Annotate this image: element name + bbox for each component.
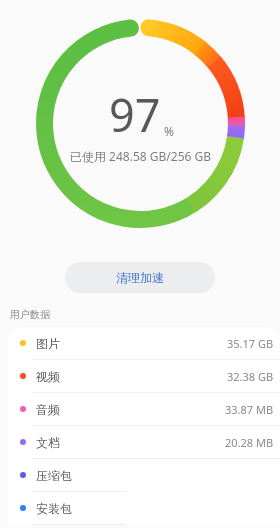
button[interactable]: 音频 <box>8 393 280 426</box>
button[interactable]: 视频 <box>8 360 280 393</box>
button[interactable]: 图片 <box>8 327 280 360</box>
staticText: 安装包 <box>36 501 72 516</box>
button[interactable]: 清理加速 <box>65 262 215 293</box>
button[interactable]: 压缩包 <box>8 459 280 492</box>
button[interactable]: 文档 <box>8 426 280 459</box>
staticText: 32.38 GB <box>227 369 274 384</box>
staticText: 33.87 MB <box>225 402 274 417</box>
staticText: % <box>164 123 174 139</box>
staticText: 35.17 GB <box>227 336 274 351</box>
staticText: 97 <box>109 84 161 145</box>
staticText: 20.28 MB <box>225 435 274 450</box>
staticText: 清理加速 <box>116 270 164 285</box>
staticText: 图片 <box>36 336 60 351</box>
staticText: 已使用 248.58 GB/256 GB <box>70 148 212 164</box>
staticText: 用户数据 <box>10 308 50 321</box>
staticText: 视频 <box>36 369 60 384</box>
staticText: 文档 <box>36 435 60 450</box>
staticText: 音频 <box>36 402 60 417</box>
staticText: 压缩包 <box>36 468 72 483</box>
button[interactable]: 安装包 <box>8 492 280 525</box>
